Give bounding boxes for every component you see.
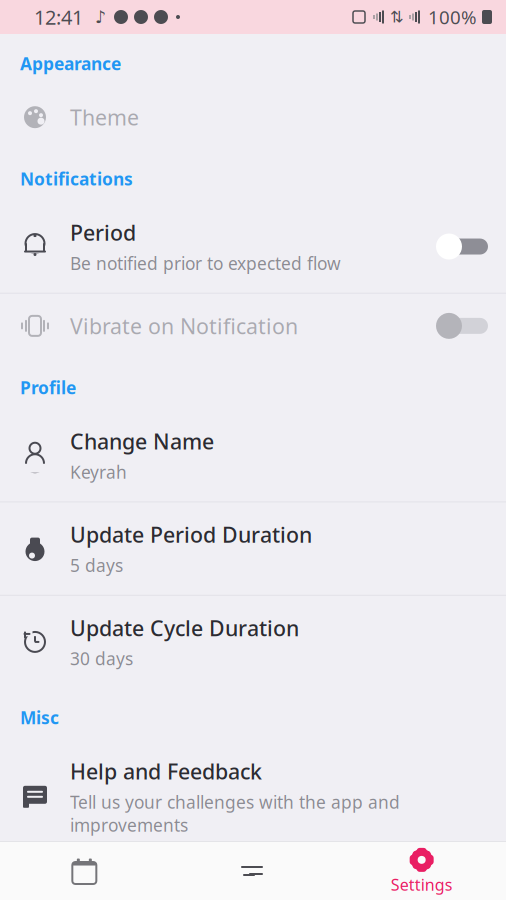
staticText: Period bbox=[70, 218, 136, 247]
staticText: 100% bbox=[428, 5, 477, 29]
staticText: Be notified prior to expected flow bbox=[70, 252, 341, 275]
staticText: 30 days bbox=[70, 647, 133, 670]
staticText: 12:41 bbox=[34, 4, 83, 30]
staticText: Settings bbox=[391, 874, 453, 895]
button[interactable]: Calendar bbox=[0, 842, 169, 900]
staticText: 5 days bbox=[70, 554, 123, 577]
staticText: ⇅ bbox=[390, 8, 403, 26]
staticText: Update Period Duration bbox=[70, 520, 312, 549]
staticText: Misc bbox=[20, 706, 59, 729]
button[interactable]: Insights bbox=[169, 842, 337, 900]
staticText: Notifications bbox=[20, 167, 133, 190]
staticText: Theme bbox=[70, 103, 139, 131]
staticText: ♪ bbox=[95, 7, 106, 27]
button[interactable]: Period bbox=[0, 200, 506, 293]
staticText: Update Cycle Duration bbox=[70, 614, 299, 642]
button[interactable]: Theme bbox=[0, 85, 506, 149]
staticText: Appearance bbox=[20, 52, 121, 75]
button[interactable]: Settings bbox=[337, 842, 506, 900]
staticText: Contact Developer bbox=[70, 873, 258, 900]
staticText: Vibrate on Notification bbox=[70, 312, 298, 340]
button[interactable]: Update Period Duration bbox=[0, 502, 506, 595]
staticText: Profile bbox=[20, 376, 76, 399]
staticText: Help and Feedback bbox=[70, 757, 262, 785]
button[interactable]: Help and Feedback bbox=[0, 739, 506, 854]
button[interactable]: Update Cycle Duration bbox=[0, 596, 506, 688]
button[interactable]: Change Name bbox=[0, 409, 506, 501]
staticText: Keyrah bbox=[70, 460, 127, 483]
staticText: Change Name bbox=[70, 427, 214, 455]
button[interactable]: Vibrate on Notification bbox=[0, 294, 506, 358]
button[interactable]: Contact Developer bbox=[0, 855, 506, 900]
staticText: Tell us your challenges with the app and… bbox=[70, 790, 400, 836]
